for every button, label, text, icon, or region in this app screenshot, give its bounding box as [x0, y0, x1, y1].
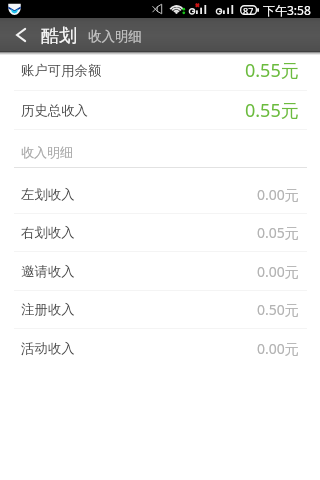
button[interactable]: 右划收入 [0, 214, 320, 251]
button[interactable]: 注册收入 [0, 291, 320, 328]
staticText: 下午3:58 [263, 2, 311, 18]
staticText: 0.05元 [257, 223, 299, 242]
button[interactable]: 左划收入 [0, 168, 320, 213]
staticText: 87 [243, 5, 254, 15]
staticText: 注册收入 [21, 301, 75, 318]
staticText: 0.00元 [257, 339, 299, 358]
staticText: 活动收入 [21, 340, 75, 357]
staticText: 收入明细 [21, 144, 73, 160]
button[interactable]: 账户可用余额 [0, 51, 320, 90]
staticText: 邀请收入 [21, 263, 75, 280]
staticText: 0.50元 [257, 300, 299, 319]
staticText: 酷划 [41, 25, 77, 48]
button[interactable]: 活动收入 [0, 329, 320, 367]
staticText: 右划收入 [21, 224, 75, 241]
staticText: 左划收入 [21, 186, 75, 203]
button[interactable]: 历史总收入 [0, 91, 320, 129]
staticText: 收入明细 [88, 28, 142, 45]
staticText: 0.55元 [245, 98, 299, 123]
staticText: 0.00元 [257, 185, 299, 204]
staticText: 历史总收入 [21, 102, 88, 119]
staticText: 0.55元 [245, 58, 299, 83]
staticText: 账户可用余额 [21, 62, 102, 79]
button[interactable]: Back [0, 21, 41, 51]
staticText: 0.00元 [257, 262, 299, 281]
button[interactable]: 邀请收入 [0, 252, 320, 290]
